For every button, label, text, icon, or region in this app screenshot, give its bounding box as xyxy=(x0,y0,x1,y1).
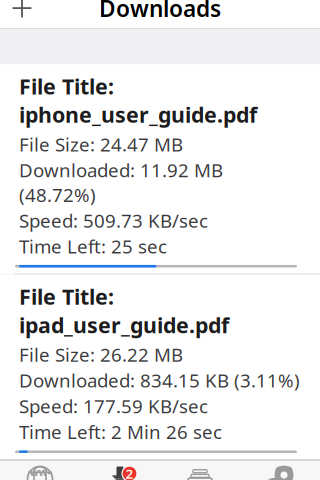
staticText: Time Left: 25 sec xyxy=(19,234,167,259)
staticText: Time Left: 2 Min 26 sec xyxy=(19,419,222,444)
staticText: 2 xyxy=(125,465,133,480)
staticText: File Size: 26.22 MB xyxy=(19,342,183,367)
staticText: Downloads xyxy=(99,0,221,23)
staticText: www xyxy=(29,465,50,480)
button[interactable]: www xyxy=(0,460,80,480)
button[interactable]: File Title: ipad_user_guide.pdf xyxy=(0,274,320,459)
staticText: Downloaded: 11.92 MB (48.72%) xyxy=(19,157,223,207)
button[interactable]: File Title: iphone_user_guide.pdf xyxy=(0,64,320,274)
button[interactable]: Add download xyxy=(0,0,44,29)
staticText: File Title: ipad_user_guide.pdf xyxy=(19,282,229,339)
staticText: Speed: 177.59 KB/sec xyxy=(19,394,208,418)
staticText: File Title: iphone_user_guide.pdf xyxy=(19,72,257,129)
button[interactable]: 2 xyxy=(80,460,160,480)
staticText: Downloaded: 834.15 KB (3.11%) xyxy=(19,368,300,393)
button[interactable]: Settings xyxy=(240,460,320,480)
staticText: File Size: 24.47 MB xyxy=(19,132,183,156)
button[interactable]: Files xyxy=(160,460,240,480)
staticText: Speed: 509.73 KB/sec xyxy=(19,208,208,233)
